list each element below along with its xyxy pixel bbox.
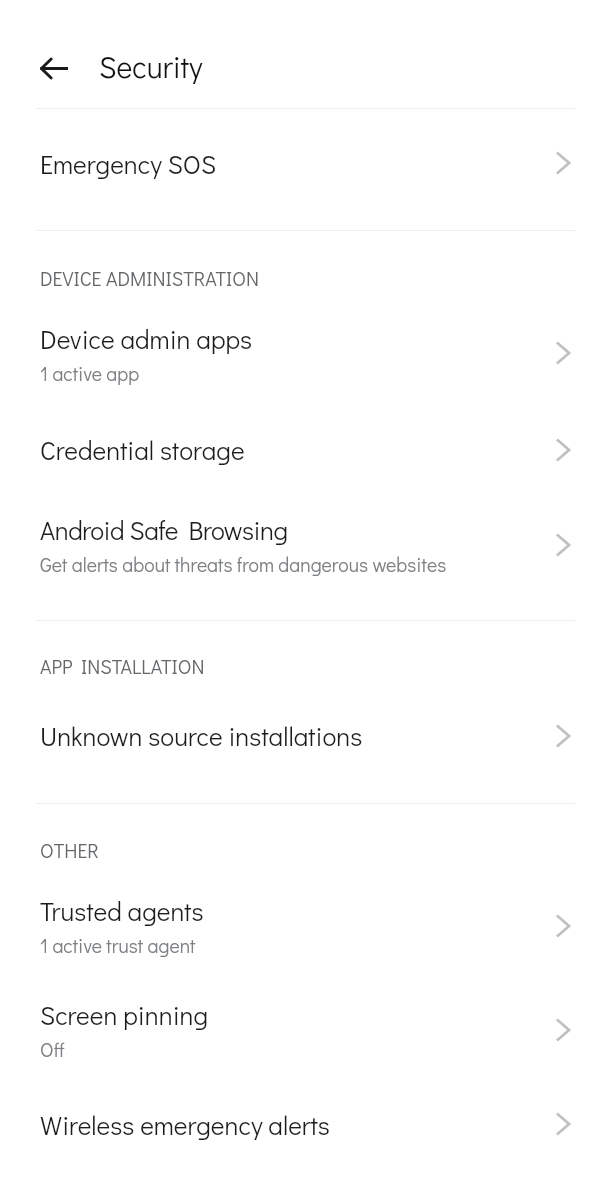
staticText: Emergency SOS: [40, 147, 217, 181]
button[interactable]: Credential storage: [0, 405, 611, 493]
staticText: Trusted agents: [40, 894, 204, 928]
staticText: Screen pinning: [40, 998, 209, 1032]
button[interactable]: Trusted agents: [0, 874, 611, 977]
button[interactable]: Emergency SOS: [0, 119, 611, 207]
staticText: Unknown source installations: [40, 719, 363, 753]
staticText: Get alerts about threats from dangerous …: [40, 552, 447, 578]
staticText: DEVICE ADMINISTRATION: [40, 265, 260, 291]
staticText: Android Safe Browsing: [40, 513, 288, 547]
staticText: OTHER: [40, 837, 99, 863]
button[interactable]: Device admin apps: [0, 302, 611, 405]
button[interactable]: Wireless emergency alerts: [0, 1080, 611, 1168]
button[interactable]: Back: [26, 40, 82, 96]
staticText: Device admin apps: [40, 322, 253, 356]
button[interactable]: Unknown source installations: [0, 692, 611, 780]
staticText: APP INSTALLATION: [40, 653, 205, 679]
staticText: 1 active app: [40, 361, 140, 387]
button[interactable]: Screen pinning: [0, 977, 611, 1080]
staticText: Off: [40, 1037, 65, 1063]
staticText: Credential storage: [40, 433, 245, 467]
staticText: Security: [99, 47, 203, 86]
staticText: Wireless emergency alerts: [40, 1108, 330, 1142]
button[interactable]: Android Safe Browsing: [0, 493, 611, 596]
staticText: 1 active trust agent: [40, 933, 196, 959]
